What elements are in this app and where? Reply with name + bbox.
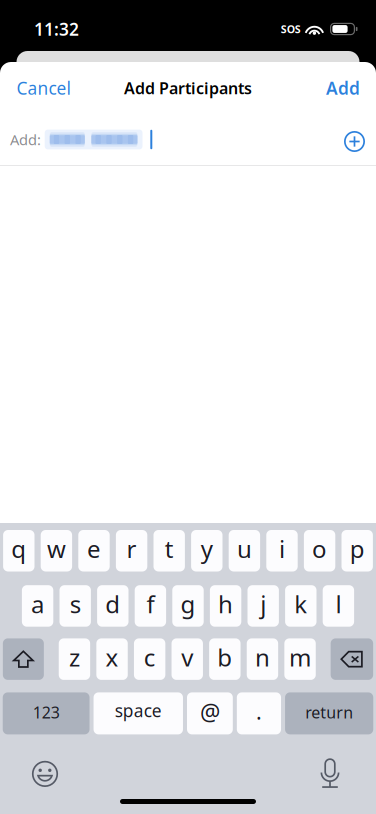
staticText: a	[31, 588, 44, 620]
staticText: q	[11, 533, 26, 565]
staticText: Cancel	[16, 76, 70, 99]
staticText: l	[335, 588, 341, 620]
staticText: Add:	[10, 130, 41, 149]
button[interactable]: Dictation	[318, 759, 342, 788]
button[interactable]: s	[59, 585, 91, 627]
button[interactable]: y	[191, 530, 222, 571]
staticText: d	[105, 588, 120, 620]
staticText: u	[237, 533, 252, 565]
button[interactable]: w	[41, 530, 72, 571]
button[interactable]: d	[97, 585, 128, 627]
button[interactable]: i	[266, 530, 298, 571]
button[interactable]: h	[210, 585, 241, 627]
staticText: v	[181, 641, 193, 673]
button[interactable]: m	[284, 638, 316, 680]
staticText: j	[260, 588, 266, 620]
button[interactable]: z	[59, 638, 90, 680]
button[interactable]: v	[172, 638, 203, 680]
button[interactable]: n	[247, 638, 278, 680]
button[interactable]: x	[96, 638, 128, 680]
staticText: .	[256, 697, 262, 725]
staticText: p	[350, 533, 365, 565]
staticText: space	[115, 699, 162, 722]
staticText: w	[47, 533, 66, 565]
button[interactable]: u	[229, 530, 260, 571]
staticText: r	[127, 533, 137, 565]
staticText: m	[289, 641, 311, 673]
staticText: y	[201, 533, 213, 565]
button[interactable]: a	[22, 585, 53, 627]
staticText: 123	[33, 702, 60, 723]
button[interactable]: 123	[3, 692, 89, 734]
button[interactable]: .	[237, 692, 281, 734]
staticText: x	[106, 641, 119, 673]
button[interactable]: space	[94, 692, 183, 734]
button[interactable]: Shift	[3, 638, 44, 680]
staticText: return	[305, 702, 353, 723]
button[interactable]: Emoji keyboard	[32, 761, 58, 787]
staticText: Add Participants	[124, 77, 252, 99]
staticText: Add	[326, 76, 360, 99]
staticText: c	[144, 641, 156, 673]
button[interactable]: t	[153, 530, 185, 571]
button[interactable]: g	[172, 585, 204, 627]
button[interactable]: j	[247, 585, 279, 627]
button[interactable]: Add contact	[344, 129, 365, 150]
button[interactable]: q	[3, 530, 34, 571]
button[interactable]: p	[341, 530, 373, 571]
staticText: h	[218, 588, 233, 620]
staticText: b	[217, 641, 232, 673]
staticText: SOS	[281, 22, 301, 36]
staticText: @	[200, 697, 220, 727]
staticText: t	[165, 533, 174, 565]
button[interactable]: Cancel	[16, 64, 86, 111]
button[interactable]: @	[187, 692, 233, 734]
button[interactable]: return	[285, 692, 373, 734]
button[interactable]: k	[285, 585, 316, 627]
staticText: e	[87, 533, 101, 565]
staticText: o	[312, 533, 327, 565]
button[interactable]: b	[209, 638, 241, 680]
button[interactable]: Add	[310, 64, 360, 111]
staticText: g	[180, 588, 195, 620]
staticText: n	[255, 641, 270, 673]
staticText: f	[146, 588, 154, 620]
staticText: k	[294, 588, 307, 620]
button[interactable]: Delete	[331, 638, 373, 680]
staticText: z	[69, 641, 80, 673]
staticText: s	[70, 588, 81, 620]
button[interactable]: f	[135, 585, 166, 627]
button[interactable]: l	[323, 585, 354, 627]
button[interactable]: o	[304, 530, 335, 571]
button[interactable]: e	[78, 530, 110, 571]
staticText: i	[279, 533, 285, 565]
button[interactable]: c	[134, 638, 165, 680]
staticText: 11:32	[34, 17, 79, 40]
button[interactable]: r	[116, 530, 147, 571]
